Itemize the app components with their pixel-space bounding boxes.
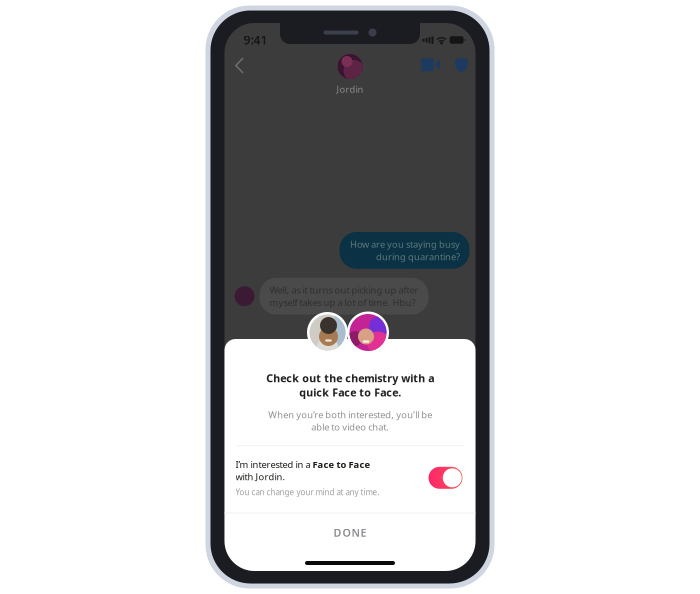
staticText: Jordin <box>336 83 363 95</box>
button[interactable]: Safety centre <box>446 48 475 79</box>
staticText: When you’re both interested, you’ll be a… <box>268 408 432 433</box>
button[interactable]: DONE <box>224 513 475 551</box>
staticText: How are you staying busy during quaranti… <box>349 238 459 263</box>
button[interactable]: Video chat <box>413 48 446 79</box>
staticText: You can change your mind at any time. <box>235 487 379 497</box>
button[interactable]: Back <box>224 47 254 80</box>
staticText: 9:41 <box>243 32 267 48</box>
staticText: DONE <box>333 525 366 540</box>
staticText: I’m interested in a Face to Face with Jo… <box>235 458 370 483</box>
button[interactable]: I’m interested in a Face to Face with Jo… <box>224 446 475 512</box>
staticText: Well, as it turns out picking up after m… <box>269 284 418 309</box>
staticText: Check out the chemistry with a quick Fac… <box>266 371 434 399</box>
